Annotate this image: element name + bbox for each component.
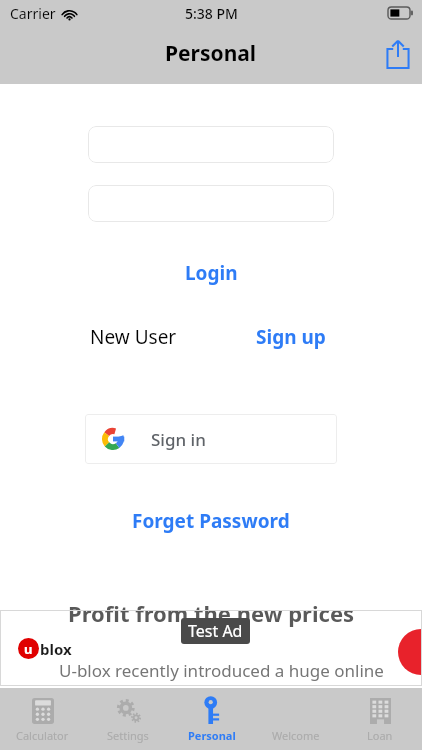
staticText: Settings [107,728,149,743]
staticText: Test Ad [188,620,243,642]
staticText: Profit from the new prices [68,598,355,628]
button[interactable]: Sign up [256,324,326,350]
staticText: Welcome [272,728,320,743]
button[interactable]: Forget Password [0,504,422,538]
button[interactable]: Loan [338,688,422,750]
button[interactable]: Sign in [85,414,337,464]
staticText: Calculator [16,728,69,743]
staticText: Loan [367,728,393,743]
staticText: New User [90,324,177,350]
button[interactable]: Settings [85,688,170,750]
staticText: Sign in [151,428,206,451]
button[interactable]: Advertisement [0,610,422,686]
button[interactable]: Welcome [254,688,338,750]
button[interactable]: Calculator [0,688,85,750]
staticText: u [24,640,33,658]
staticText: blox [40,639,72,659]
staticText: 5:38 PM [185,4,238,23]
button[interactable]: Share [374,30,422,78]
button[interactable]: Password field [88,185,334,222]
staticText: Sign up [256,324,326,350]
staticText: U-blox recently introduced a huge online [59,659,384,682]
button[interactable]: Personal [170,688,254,750]
staticText: Carrier [10,4,56,23]
staticText: Personal [188,728,236,743]
button[interactable]: Login [0,256,422,290]
staticText: Personal [165,39,257,68]
button[interactable]: Username field [88,126,334,163]
staticText: Login [185,260,238,286]
staticText: Forget Password [132,508,290,534]
